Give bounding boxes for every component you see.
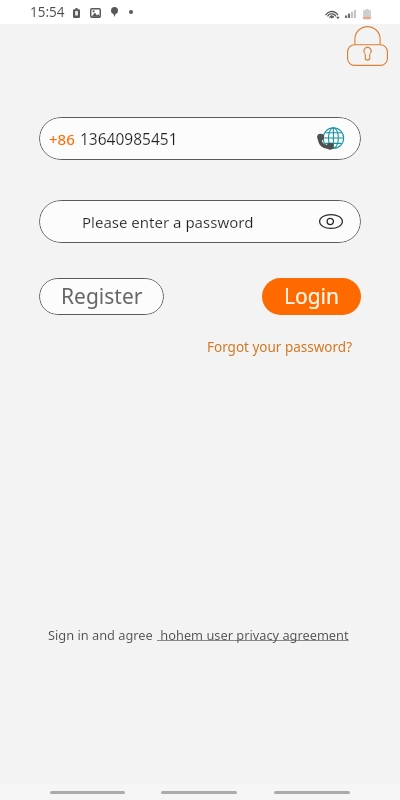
button[interactable]: Please enter a password [39, 200, 361, 243]
button[interactable]: Back [50, 791, 125, 794]
button[interactable]: Select country code [318, 127, 344, 150]
button[interactable]: Forgot your password? [203, 336, 357, 358]
staticText: Login [284, 282, 340, 311]
staticText: +86 [49, 129, 75, 149]
staticText: Register [61, 282, 143, 311]
button[interactable]: Account security [337, 16, 397, 75]
button[interactable]: +86 [39, 117, 361, 160]
staticText: Please enter a password [82, 212, 254, 232]
staticText: Sign in and agree [48, 626, 157, 643]
button[interactable]: Register [39, 278, 164, 315]
staticText: 15:54 [30, 3, 65, 21]
staticText: 13640985451 [80, 128, 178, 149]
button[interactable]: Recent apps [274, 791, 350, 794]
button[interactable]: hohem user privacy agreement [157, 626, 352, 643]
button[interactable]: Show password [319, 214, 343, 229]
button[interactable]: Login [262, 278, 361, 315]
staticText: Forgot your password? [207, 338, 353, 356]
staticText: hohem user privacy agreement [157, 626, 352, 643]
button[interactable]: Home [161, 791, 237, 794]
